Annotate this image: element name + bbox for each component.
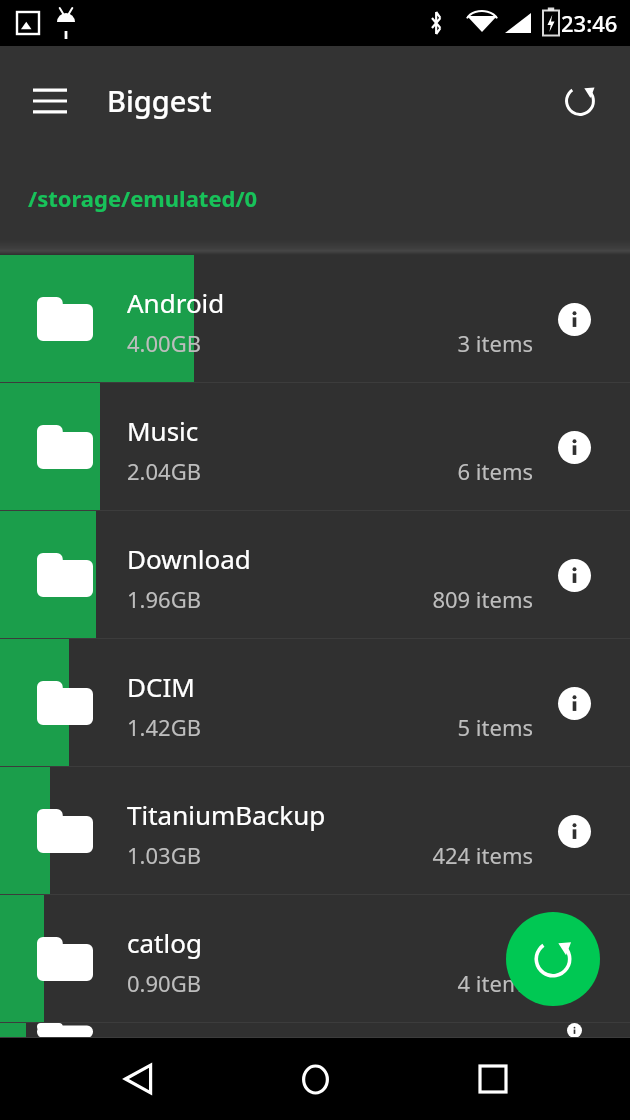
- button[interactable]: Info about Music: [544, 417, 604, 477]
- staticText: Music: [127, 413, 199, 448]
- staticText: 2.04GB: [127, 456, 201, 486]
- button[interactable]: Recent apps: [453, 1039, 533, 1119]
- staticText: 1.96GB: [127, 584, 201, 614]
- button[interactable]: Info about Android: [544, 289, 604, 349]
- staticText: 5 items: [457, 712, 533, 742]
- staticText: 0.90GB: [127, 968, 201, 998]
- staticText: 6 items: [457, 456, 533, 486]
- button[interactable]: Home: [275, 1039, 355, 1119]
- button[interactable]: Pictures: [0, 1023, 630, 1038]
- staticText: 4.00GB: [127, 328, 201, 358]
- button[interactable]: Refresh: [506, 912, 600, 1006]
- staticText: 3 items: [457, 328, 533, 358]
- button[interactable]: Info about Pictures: [544, 1023, 604, 1038]
- button[interactable]: Info about DCIM: [544, 673, 604, 733]
- button[interactable]: Refresh: [550, 71, 610, 131]
- button[interactable]: DCIM: [0, 639, 630, 767]
- staticText: catlog: [127, 925, 202, 960]
- button[interactable]: Back: [98, 1039, 178, 1119]
- button[interactable]: Info about Download: [544, 545, 604, 605]
- button[interactable]: Android: [0, 255, 630, 383]
- staticText: 23:46: [561, 8, 618, 38]
- button[interactable]: Download: [0, 511, 630, 639]
- staticText: 4 items: [457, 968, 533, 998]
- staticText: TitaniumBackup: [127, 797, 326, 832]
- staticText: /storage/emulated/0: [28, 183, 258, 213]
- staticText: DCIM: [127, 669, 195, 704]
- button[interactable]: Open navigation drawer: [14, 65, 86, 137]
- staticText: Download: [127, 541, 251, 576]
- button[interactable]: Info about catlog: [544, 929, 604, 989]
- button[interactable]: catlog: [0, 895, 630, 1023]
- button[interactable]: Info about TitaniumBackup: [544, 801, 604, 861]
- staticText: 424 items: [432, 840, 533, 870]
- button[interactable]: Music: [0, 383, 630, 511]
- staticText: 1.03GB: [127, 840, 201, 870]
- staticText: 1.42GB: [127, 712, 201, 742]
- staticText: Android: [127, 285, 225, 320]
- button[interactable]: TitaniumBackup: [0, 767, 630, 895]
- staticText: Biggest: [107, 81, 212, 120]
- staticText: 809 items: [432, 584, 533, 614]
- button[interactable]: /storage/emulated/0: [0, 155, 630, 240]
